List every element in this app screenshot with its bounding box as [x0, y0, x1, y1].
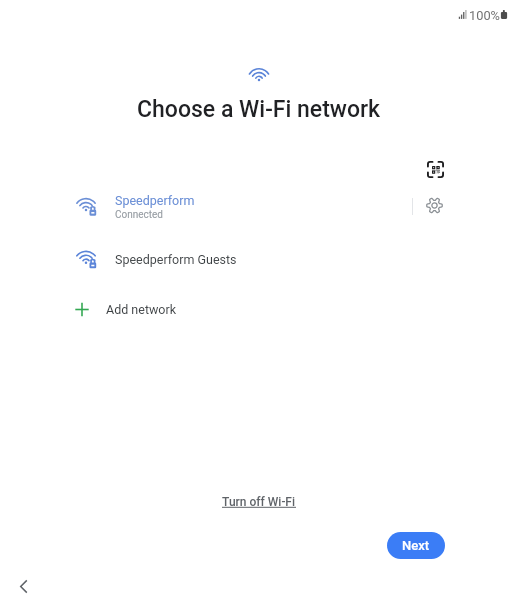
- button[interactable]: Back: [7, 572, 37, 602]
- button[interactable]: Scan QR code: [418, 153, 452, 186]
- staticText: Choose a Wi-Fi network: [137, 96, 381, 123]
- button[interactable]: Add network: [0, 292, 518, 326]
- button[interactable]: Next: [387, 532, 445, 559]
- staticText: Next: [402, 538, 430, 553]
- button[interactable]: Speedperform Guests: [0, 239, 518, 278]
- staticText: 100%: [469, 8, 500, 23]
- button[interactable]: Speedperform: [0, 185, 518, 226]
- button[interactable]: Network settings: [419, 190, 450, 221]
- staticText: Speedperform: [115, 193, 195, 208]
- staticText: Connected: [115, 209, 164, 221]
- button[interactable]: Turn off Wi-Fi: [221, 493, 297, 511]
- staticText: Speedperform Guests: [115, 252, 237, 267]
- staticText: Add network: [106, 302, 177, 317]
- staticText: Turn off Wi-Fi: [222, 495, 296, 509]
